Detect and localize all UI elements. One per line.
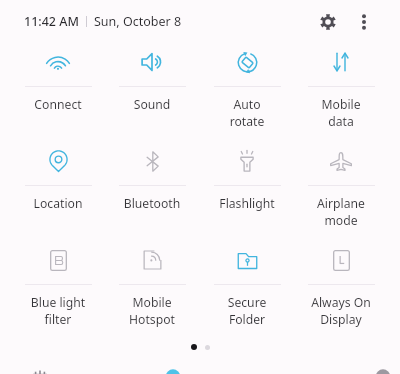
staticText: Blue light filter bbox=[11, 294, 105, 328]
staticText: Auto rotate bbox=[200, 96, 294, 130]
staticText: Connect bbox=[11, 96, 105, 113]
staticText: Always On Display bbox=[294, 294, 388, 328]
staticText: Flashlight bbox=[200, 195, 294, 212]
button[interactable]: Always On Display bbox=[294, 244, 388, 320]
button[interactable]: Auto rotate bbox=[200, 46, 294, 122]
button[interactable]: Location bbox=[11, 145, 105, 221]
button[interactable]: Connect bbox=[11, 46, 105, 122]
staticText: Airplane mode bbox=[294, 195, 388, 229]
staticText: Secure Folder bbox=[200, 294, 294, 328]
button[interactable]: Secure Folder bbox=[200, 244, 294, 320]
button[interactable]: Settings bbox=[310, 4, 346, 40]
staticText: Sound bbox=[105, 96, 199, 113]
staticText: 11:42 AM bbox=[24, 13, 79, 30]
button[interactable]: Bluetooth bbox=[105, 145, 199, 221]
staticText: Location bbox=[11, 195, 105, 212]
button[interactable]: Blue light filter bbox=[11, 244, 105, 320]
button[interactable]: Airplane mode bbox=[294, 145, 388, 221]
button[interactable]: Flashlight bbox=[200, 145, 294, 221]
staticText: Mobile Hotspot bbox=[105, 294, 199, 328]
staticText: Sun, October 8 bbox=[94, 13, 182, 30]
button[interactable]: More options bbox=[346, 4, 382, 40]
button[interactable]: Mobile Hotspot bbox=[105, 244, 199, 320]
button[interactable]: Sound bbox=[105, 46, 199, 122]
staticText: Bluetooth bbox=[105, 195, 199, 212]
staticText: Mobile data bbox=[294, 96, 388, 130]
button[interactable]: Mobile data bbox=[294, 46, 388, 122]
